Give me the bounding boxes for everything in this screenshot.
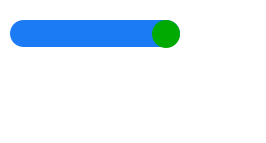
button[interactable]: [10, 20, 180, 48]
